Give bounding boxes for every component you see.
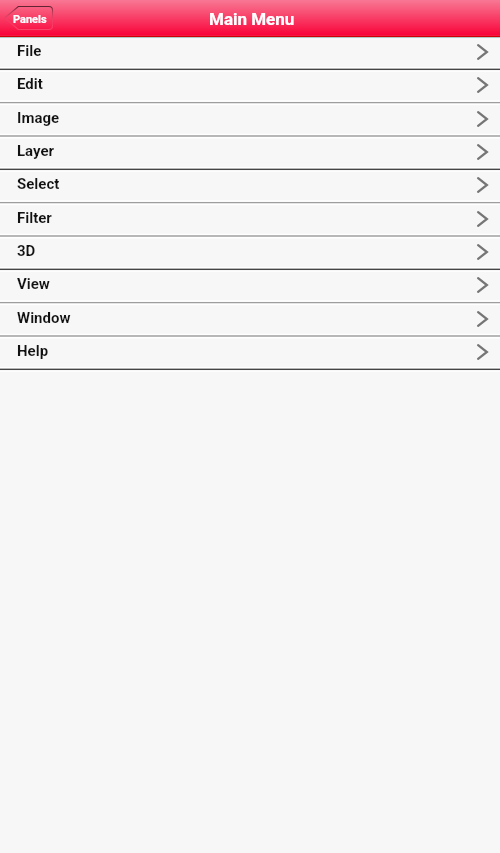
- button[interactable]: View: [0, 269, 500, 302]
- staticText: Layer: [17, 142, 55, 160]
- staticText: Main Menu: [209, 9, 295, 29]
- button[interactable]: Help: [0, 336, 500, 369]
- staticText: Filter: [17, 209, 52, 227]
- button[interactable]: Filter: [0, 203, 500, 236]
- staticText: View: [17, 275, 50, 293]
- button[interactable]: Image: [0, 103, 500, 136]
- button[interactable]: Select: [0, 169, 500, 202]
- staticText: Window: [17, 309, 71, 327]
- staticText: Image: [17, 109, 60, 127]
- button[interactable]: 3D: [0, 236, 500, 269]
- staticText: Help: [17, 342, 49, 360]
- staticText: 3D: [17, 242, 36, 260]
- staticText: Panels: [13, 13, 47, 26]
- button[interactable]: File: [0, 36, 500, 69]
- button[interactable]: Panels: [4, 6, 53, 30]
- button[interactable]: Window: [0, 303, 500, 336]
- staticText: Edit: [17, 75, 43, 93]
- button[interactable]: Edit: [0, 69, 500, 102]
- button[interactable]: Layer: [0, 136, 500, 169]
- staticText: File: [17, 42, 42, 60]
- staticText: Select: [17, 175, 60, 193]
